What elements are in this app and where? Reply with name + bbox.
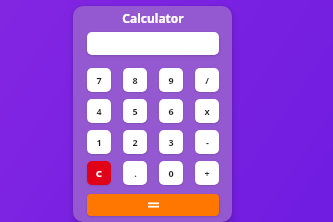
button[interactable]: - <box>195 130 219 154</box>
staticText: 4 <box>96 105 102 117</box>
button[interactable]: x <box>195 99 219 123</box>
button[interactable]: / <box>195 68 219 92</box>
staticText: / <box>205 74 209 86</box>
button[interactable]: 1 <box>87 130 111 154</box>
staticText: 0 <box>168 167 174 179</box>
button[interactable]: Display <box>87 32 219 55</box>
staticText: 6 <box>168 105 174 117</box>
button[interactable]: 7 <box>87 68 111 92</box>
staticText: 3 <box>168 136 174 148</box>
staticText: 1 <box>96 136 102 148</box>
button[interactable]: 0 <box>159 161 183 185</box>
staticText: Calculator <box>122 10 184 26</box>
button[interactable]: Equals <box>87 194 219 216</box>
staticText: 9 <box>168 74 174 86</box>
staticText: 8 <box>132 74 138 86</box>
button[interactable]: 9 <box>159 68 183 92</box>
staticText: 5 <box>132 105 138 117</box>
staticText: - <box>206 136 209 148</box>
staticText: + <box>204 167 210 179</box>
button[interactable]: 5 <box>123 99 147 123</box>
button[interactable]: C <box>87 161 111 185</box>
button[interactable]: 4 <box>87 99 111 123</box>
staticText: C <box>96 167 102 179</box>
button[interactable]: 6 <box>159 99 183 123</box>
button[interactable]: + <box>195 161 219 185</box>
staticText: x <box>204 105 210 117</box>
staticText: 7 <box>96 74 102 86</box>
button[interactable]: 2 <box>123 130 147 154</box>
button[interactable]: 8 <box>123 68 147 92</box>
staticText: 2 <box>132 136 138 148</box>
button[interactable]: 3 <box>159 130 183 154</box>
button[interactable]: . <box>123 161 147 185</box>
staticText: . <box>134 167 137 179</box>
